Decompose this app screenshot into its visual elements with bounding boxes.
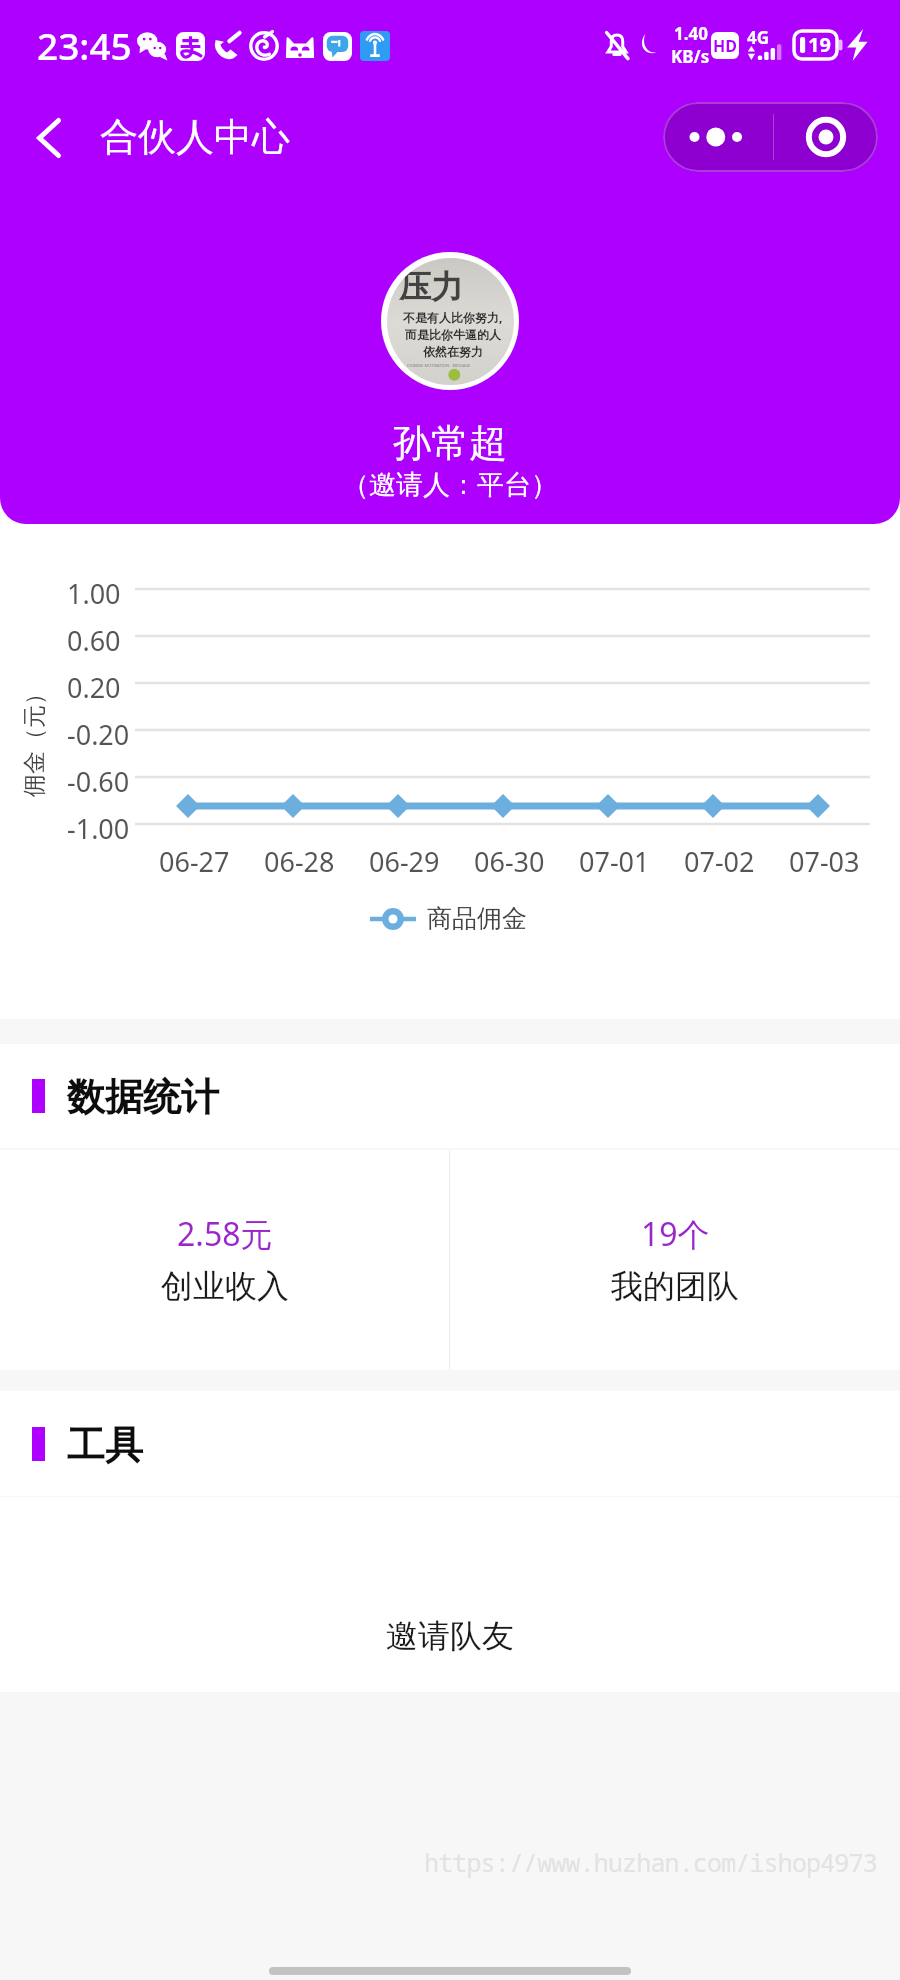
- button[interactable]: 19个: [450, 1150, 900, 1370]
- staticText: 06-29: [369, 843, 440, 880]
- staticText: 工具: [67, 1421, 143, 1469]
- staticText: 06-28: [264, 843, 335, 880]
- staticText: 07-03: [789, 843, 860, 880]
- button[interactable]: More: [663, 102, 773, 172]
- staticText: （邀请人：平台）: [0, 468, 900, 502]
- button[interactable]: Close mini program: [774, 102, 878, 172]
- staticText: -1.00: [67, 810, 130, 847]
- staticText: -0.20: [67, 716, 130, 753]
- button[interactable]: Back: [17, 106, 81, 170]
- staticText: 压力: [399, 267, 463, 307]
- staticText: 4G: [747, 26, 770, 49]
- staticText: https://www.huzhan.com/ishop4973: [424, 1845, 877, 1879]
- staticText: 依然在努力: [423, 344, 483, 359]
- staticText: 19个: [641, 1212, 710, 1256]
- staticText: 1.00: [67, 575, 121, 612]
- staticText: HD: [713, 35, 737, 57]
- staticText: 我的团队: [611, 1266, 739, 1306]
- staticText: 07-01: [579, 843, 650, 880]
- staticText: 不是有人比你努力,: [403, 309, 503, 325]
- staticText: 0.20: [67, 669, 121, 706]
- staticText: 孙常超: [0, 419, 900, 467]
- staticText: CHINESE MOTIVATION - MESSAGE: [407, 363, 471, 368]
- staticText: 19: [808, 31, 831, 58]
- staticText: 数据统计: [67, 1073, 219, 1121]
- staticText: 商品佣金: [427, 903, 527, 934]
- staticText: 邀请队友: [0, 1616, 900, 1656]
- staticText: 合伙人中心: [100, 113, 290, 161]
- staticText: 创业收入: [161, 1266, 289, 1306]
- staticText: -0.60: [67, 763, 130, 800]
- staticText: 07-02: [684, 843, 755, 880]
- staticText: 23:45: [37, 20, 132, 70]
- staticText: KB/s: [671, 45, 710, 68]
- staticText: 佣金（元）: [20, 682, 49, 797]
- staticText: 而是比你牛逼的人: [405, 327, 501, 342]
- button[interactable]: 邀请队友: [0, 1497, 900, 1692]
- button[interactable]: 2.58元: [0, 1150, 449, 1370]
- staticText: 06-27: [159, 843, 230, 880]
- button[interactable]: Avatar: [381, 252, 519, 390]
- staticText: 0.60: [67, 622, 121, 659]
- staticText: 06-30: [474, 843, 545, 880]
- staticText: 2.58元: [177, 1212, 273, 1256]
- staticText: 1.40: [674, 22, 708, 45]
